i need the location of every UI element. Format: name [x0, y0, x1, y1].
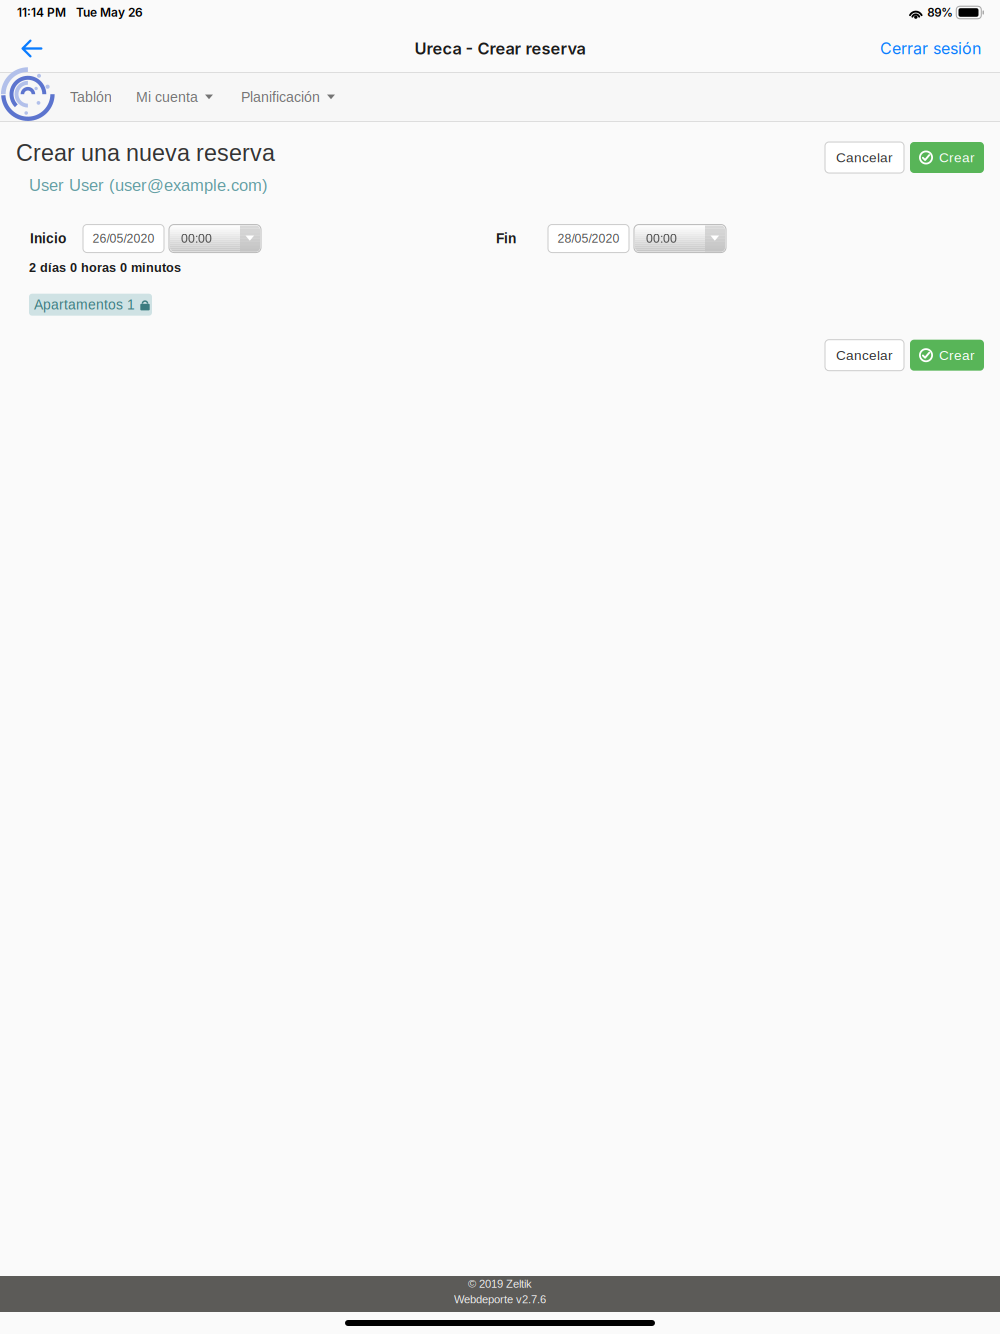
staticText: Crear: [939, 150, 975, 165]
staticText: User User (user@example.com): [29, 176, 268, 195]
staticText: Cancelar: [836, 348, 893, 363]
button[interactable]: 28/05/2020: [548, 224, 629, 252]
staticText: Fin: [496, 231, 516, 246]
staticText: Mi cuenta: [136, 89, 198, 105]
button[interactable]: 26/05/2020: [83, 224, 164, 252]
staticText: 2 días 0 horas 0 minutos: [29, 260, 181, 275]
button[interactable]: User User (user@example.com): [29, 176, 268, 195]
staticText: 26/05/2020: [92, 232, 154, 245]
staticText: Crear una nueva reserva: [16, 140, 275, 166]
button[interactable]: Crear: [910, 340, 984, 371]
button[interactable]: Cerrar sesión: [871, 25, 990, 71]
button[interactable]: Tablón: [61, 73, 121, 121]
staticText: Apartamentos 1: [34, 297, 135, 312]
staticText: Tue May 26: [76, 5, 143, 20]
button[interactable]: Cancelar: [825, 340, 904, 371]
staticText: 00:00: [181, 232, 212, 245]
staticText: Ureca - Crear reserva: [414, 39, 585, 58]
button[interactable]: Mi cuenta: [127, 73, 222, 121]
button[interactable]: Back: [10, 25, 54, 71]
button[interactable]: 00:00: [634, 224, 726, 252]
button[interactable]: Apartamentos 1: [29, 294, 152, 316]
staticText: 89%: [927, 5, 953, 19]
staticText: Tablón: [70, 89, 112, 105]
staticText: Inicio: [30, 231, 66, 246]
staticText: Cerrar sesión: [880, 39, 981, 58]
staticText: 00:00: [646, 232, 677, 245]
staticText: Cancelar: [836, 150, 893, 165]
staticText: Crear: [939, 348, 975, 363]
staticText: Planificación: [241, 89, 320, 105]
button[interactable]: 00:00: [169, 224, 261, 252]
staticText: 28/05/2020: [557, 232, 619, 245]
staticText: Webdeporte v2.7.6: [454, 1293, 546, 1305]
button[interactable]: Cancelar: [825, 142, 904, 173]
button[interactable]: Crear: [910, 142, 984, 173]
button[interactable]: Planificación: [232, 73, 344, 121]
staticText: © 2019 Zeltik: [468, 1277, 532, 1290]
staticText: 11:14 PM: [17, 5, 66, 20]
